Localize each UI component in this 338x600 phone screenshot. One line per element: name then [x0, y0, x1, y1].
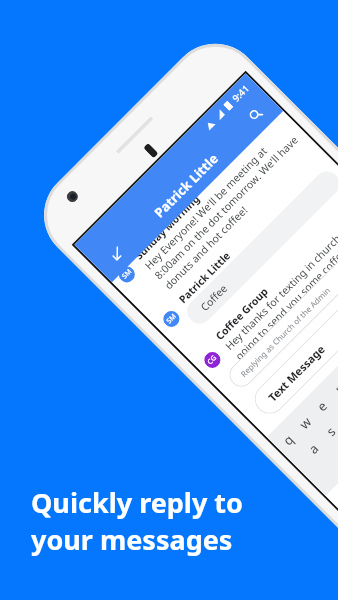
- staticText: s: [322, 422, 338, 440]
- staticText: a: [304, 439, 323, 458]
- staticText: SM: [120, 267, 135, 281]
- staticText: Coffee Group: [212, 284, 271, 343]
- staticText: e: [313, 397, 331, 415]
- staticText: Replying as Church of the Admin: [238, 284, 333, 379]
- button[interactable]: a: [296, 431, 330, 465]
- button[interactable]: Text Message: [248, 245, 338, 420]
- button[interactable]: s: [313, 414, 338, 448]
- staticText: 9:41: [229, 82, 252, 105]
- staticText: Coffee: [197, 281, 231, 314]
- staticText: Patrick Little: [176, 248, 234, 306]
- staticText: r: [330, 380, 338, 397]
- button[interactable]: Search: [241, 100, 271, 129]
- button[interactable]: Back: [102, 239, 132, 269]
- button[interactable]: q: [271, 423, 305, 457]
- button[interactable]: z: [325, 435, 338, 470]
- staticText: Text Message: [265, 341, 328, 404]
- staticText: q: [279, 431, 297, 449]
- button[interactable]: Coffee: [182, 166, 338, 329]
- staticText: your messages: [31, 521, 233, 558]
- button[interactable]: r: [322, 372, 338, 406]
- staticText: Sunday Morning: [132, 192, 202, 262]
- button[interactable]: d: [330, 397, 338, 431]
- button[interactable]: e: [305, 389, 338, 423]
- staticText: Hey Everyone! We'll be meeting at 8:00am…: [142, 123, 311, 292]
- button[interactable]: w: [288, 406, 322, 440]
- staticText: SM: [164, 311, 179, 326]
- staticText: Hey thanks for texting in church. going …: [222, 229, 338, 363]
- staticText: CG: [205, 353, 219, 367]
- staticText: Quickly reply to: [31, 484, 243, 521]
- staticText: w: [295, 412, 316, 433]
- staticText: Patrick Little: [150, 149, 222, 221]
